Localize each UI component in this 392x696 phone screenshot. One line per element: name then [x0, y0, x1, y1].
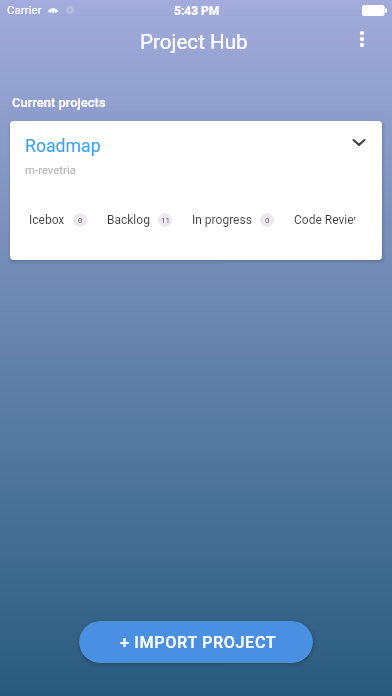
staticText: 0 — [265, 216, 270, 225]
staticText: In progress — [192, 213, 252, 227]
button[interactable]: More options — [344, 21, 380, 57]
staticText: Code Review — [294, 213, 355, 227]
button[interactable]: Roadmap — [10, 121, 382, 260]
staticText: Carrier — [7, 3, 42, 17]
staticText: + IMPORT PROJECT — [120, 633, 277, 652]
staticText: 11 — [161, 216, 170, 225]
staticText: Backlog — [107, 213, 150, 227]
staticText: Current projects — [12, 95, 106, 110]
staticText: 0 — [78, 216, 83, 225]
staticText: m-revetria — [25, 163, 76, 176]
staticText: 5:43 PM — [174, 4, 220, 18]
button[interactable]: + IMPORT PROJECT — [79, 621, 313, 663]
staticText: Roadmap — [25, 136, 101, 157]
button[interactable]: Expand — [342, 125, 376, 159]
staticText: Project Hub — [140, 30, 248, 54]
staticText: Icebox — [29, 213, 65, 227]
